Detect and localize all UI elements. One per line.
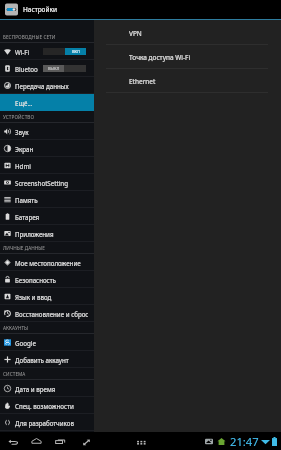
button[interactable]: Recent apps — [53, 434, 68, 449]
staticText: АККАУНТЫ — [3, 325, 29, 331]
button[interactable]: Wi-Fi — [0, 43, 94, 60]
staticText: Для разработчиков — [15, 419, 74, 427]
staticText: Wi-Fi — [15, 48, 30, 56]
staticText: Экран — [15, 145, 34, 153]
button[interactable]: Back — [6, 435, 21, 450]
button[interactable]: Ещё... — [0, 94, 94, 111]
button[interactable]: Язык и ввод — [0, 288, 94, 305]
button[interactable]: Hdmi — [0, 157, 94, 174]
staticText: ScreenshotSetting — [15, 179, 68, 187]
staticText: Безопасность — [15, 276, 56, 284]
button[interactable]: Приложения — [0, 225, 94, 242]
staticText: Ethernet — [129, 77, 156, 86]
staticText: Язык и ввод — [15, 293, 52, 301]
staticText: Батарея — [15, 213, 40, 221]
staticText: СИСТЕМА — [3, 371, 26, 377]
button[interactable]: Для разработчиков — [0, 414, 94, 431]
button[interactable]: Безопасность — [0, 271, 94, 288]
staticText: ЛИЧНЫЕ ДАННЫЕ — [3, 245, 45, 251]
staticText: Дата и время — [15, 385, 56, 393]
button[interactable]: Восстановление и сброс — [0, 305, 94, 322]
button[interactable]: Мое местоположение — [0, 254, 94, 271]
staticText: Передача данных — [15, 82, 69, 90]
staticText: Восстановление и сброс — [15, 310, 89, 318]
staticText: БЕСПРОВОДНЫЕ СЕТИ — [3, 34, 56, 40]
button[interactable]: Экран — [0, 140, 94, 157]
button[interactable]: Передача данных — [0, 77, 94, 94]
staticText: Мое местоположение — [15, 259, 81, 267]
button[interactable]: Добавить аккаунт — [0, 351, 94, 368]
staticText: Bluetoo — [15, 65, 38, 73]
staticText: Точка доступа Wi-Fi — [129, 53, 191, 62]
button[interactable]: Звук — [0, 123, 94, 140]
staticText: Настройки — [23, 5, 58, 14]
button[interactable]: All apps — [134, 435, 149, 450]
staticText: Звук — [15, 128, 29, 136]
staticText: Приложения — [15, 230, 54, 238]
button[interactable]: Дата и время — [0, 380, 94, 397]
button[interactable]: Батарея — [0, 208, 94, 225]
button[interactable]: Ethernet — [94, 69, 281, 93]
button[interactable]: Точка доступа Wi-Fi — [94, 45, 281, 69]
button[interactable]: Bluetoo — [0, 60, 94, 77]
staticText: VPN — [129, 29, 142, 38]
staticText: ВЫКЛ — [48, 66, 60, 71]
button[interactable]: Google — [0, 334, 94, 351]
button[interactable]: Status — [203, 432, 279, 450]
staticText: Google — [15, 339, 36, 347]
staticText: Добавить аккаунт — [15, 356, 69, 364]
staticText: 21:47 — [230, 434, 259, 449]
button[interactable]: VPN — [94, 21, 281, 45]
button[interactable]: Память — [0, 191, 94, 208]
staticText: ВКЛ — [72, 49, 80, 54]
staticText: УСТРОЙСТВО — [3, 114, 35, 120]
button[interactable]: ScreenshotSetting — [0, 174, 94, 191]
staticText: Hdmi — [15, 162, 31, 170]
button[interactable]: Спец. возможности — [0, 397, 94, 414]
button[interactable]: Home — [29, 434, 44, 449]
staticText: Память — [15, 196, 38, 204]
staticText: Спец. возможности — [15, 402, 74, 410]
button[interactable]: Full screen — [79, 435, 94, 450]
staticText: Ещё... — [15, 99, 33, 107]
